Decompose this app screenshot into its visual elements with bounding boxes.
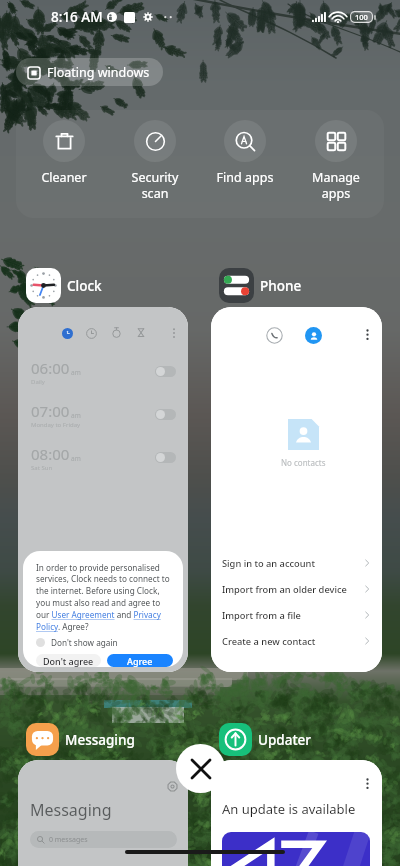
button[interactable]: 06:00 bbox=[18, 307, 188, 672]
staticText: 07:00 bbox=[31, 401, 70, 421]
staticText: 100 bbox=[355, 12, 368, 22]
staticText: Don't agree bbox=[43, 655, 94, 667]
staticText: 0 messages bbox=[49, 835, 88, 845]
staticText: Manage apps bbox=[293, 169, 379, 201]
button[interactable]: Agree bbox=[107, 654, 173, 667]
button[interactable]: Clock bbox=[18, 268, 102, 307]
staticText: An update is available bbox=[222, 800, 356, 818]
staticText: Don't show again bbox=[51, 637, 118, 648]
staticText: Messaging bbox=[65, 731, 135, 749]
button[interactable] bbox=[155, 366, 176, 377]
staticText: am bbox=[71, 411, 81, 420]
button[interactable]: Don't agree bbox=[36, 654, 101, 667]
button[interactable]: Security scan bbox=[112, 110, 198, 201]
staticText: Import from an older device bbox=[222, 583, 347, 596]
staticText: 06:00 bbox=[31, 358, 70, 378]
staticText: Find apps bbox=[202, 169, 288, 186]
button[interactable]: Close all bbox=[176, 744, 225, 793]
staticText: Floating windows bbox=[47, 64, 150, 81]
button[interactable]: 08:00 bbox=[18, 436, 188, 479]
staticText: Agree bbox=[127, 655, 153, 667]
button[interactable]: Manage apps bbox=[293, 110, 379, 201]
button[interactable] bbox=[155, 452, 176, 463]
button[interactable]: Messaging bbox=[18, 760, 188, 866]
button[interactable]: 06:00 bbox=[18, 350, 188, 393]
button[interactable]: Sign in to an account bbox=[211, 550, 382, 576]
button[interactable]: Updater bbox=[211, 723, 312, 760]
staticText: Sign in to an account bbox=[222, 557, 315, 570]
staticText: Updater bbox=[258, 731, 312, 749]
button[interactable]: Find apps bbox=[202, 110, 288, 186]
staticText: Clock bbox=[67, 277, 102, 295]
staticText: In order to provide personalised service… bbox=[36, 562, 173, 633]
button[interactable]: Floating windows bbox=[16, 58, 163, 86]
button[interactable]: Create a new contact bbox=[211, 628, 382, 654]
staticText: Import from a file bbox=[222, 609, 301, 622]
staticText: Messaging bbox=[30, 799, 112, 821]
staticText: Monday to Friday bbox=[31, 421, 81, 429]
button[interactable]: 07:00 bbox=[18, 393, 188, 436]
staticText: Cleaner bbox=[21, 169, 107, 186]
staticText: Sat Sun bbox=[31, 464, 53, 472]
button[interactable]: No contacts bbox=[211, 307, 382, 672]
staticText: 8:16 AM bbox=[51, 8, 103, 26]
staticText: Phone bbox=[260, 277, 302, 295]
staticText: Create a new contact bbox=[222, 635, 316, 648]
button[interactable]: Import from an older device bbox=[211, 576, 382, 602]
staticText: am bbox=[71, 454, 81, 463]
button[interactable]: An update is available bbox=[211, 760, 382, 866]
button[interactable]: Messaging bbox=[18, 723, 135, 760]
staticText: am bbox=[71, 368, 81, 377]
staticText: Security scan bbox=[112, 169, 198, 201]
button[interactable] bbox=[155, 409, 176, 420]
staticText: 08:00 bbox=[31, 444, 70, 464]
button[interactable]: Cleaner bbox=[21, 110, 107, 186]
staticText: Daily bbox=[31, 378, 45, 386]
button[interactable]: Import from a file bbox=[211, 602, 382, 628]
staticText: No contacts bbox=[281, 457, 326, 468]
button[interactable]: Phone bbox=[211, 268, 302, 307]
